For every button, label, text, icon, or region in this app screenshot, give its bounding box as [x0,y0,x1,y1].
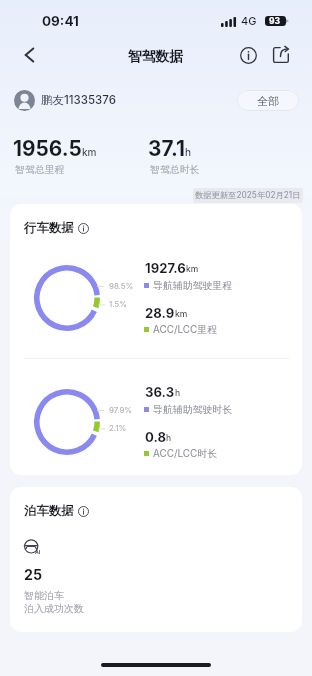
button[interactable]: Back [11,37,47,73]
staticText: 智驾总时长 [150,163,200,175]
staticText: 鹏友11335376 [41,93,116,108]
staticText: 泊入成功次数 [24,602,84,615]
staticText: 25 [24,566,43,583]
staticText: 行车数据 [24,220,74,236]
staticText: 4G [241,14,257,27]
staticText: AI [35,549,41,555]
staticText: 泊车数据 [24,503,74,519]
staticText: km [175,309,188,319]
staticText: 1956.5 [13,136,82,161]
staticText: 数据更新至2025年02月21日 [195,190,301,201]
staticText: h [175,388,181,398]
staticText: 97.9% [109,405,133,415]
staticText: km [82,146,97,158]
staticText: 0.8 [145,429,166,445]
button[interactable]: Info [233,40,263,70]
staticText: 智驾数据 [128,48,184,65]
staticText: km [186,264,199,274]
staticText: 智能泊车 [24,589,64,602]
staticText: 98.5% [109,281,134,291]
staticText: 28.9 [145,305,175,321]
staticText: 36.3 [145,384,175,400]
staticText: 导航辅助驾驶时长 [153,403,233,415]
staticText: 1927.6 [145,260,186,276]
staticText: ACC/LCC时长 [153,447,218,460]
staticText: h [185,146,192,158]
button[interactable]: 全部 [237,90,299,111]
staticText: 导航辅助驾驶里程 [153,279,233,291]
staticText: 93 [269,16,281,26]
button[interactable]: Share [266,40,296,70]
staticText: 全部 [257,94,279,108]
staticText: 智驾总里程 [15,163,65,175]
staticText: 1.5% [109,299,127,309]
staticText: ACC/LCC里程 [153,323,218,336]
staticText: 2.1% [109,423,127,433]
staticText: 37.1 [148,136,185,161]
staticText: h [166,433,172,443]
staticText: 09:41 [42,13,79,29]
